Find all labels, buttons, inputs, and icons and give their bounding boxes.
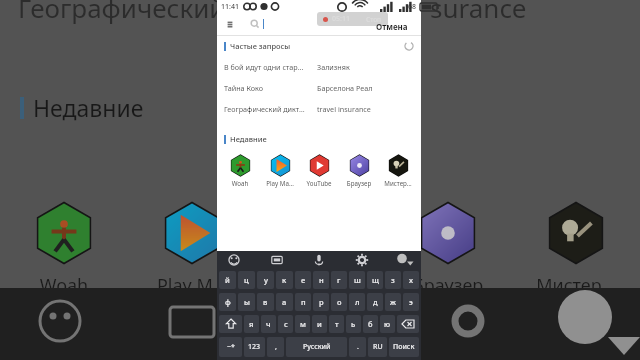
button[interactable]: Play Ma…	[262, 153, 298, 187]
button[interactable]: Браузер	[406, 196, 490, 298]
button[interactable]: Backspace	[397, 315, 419, 333]
staticText: б	[368, 319, 373, 329]
button[interactable]: к	[276, 271, 293, 289]
button[interactable]: у	[257, 271, 274, 289]
button[interactable]: и	[312, 315, 327, 333]
staticText: ~*	[227, 342, 235, 352]
button[interactable]: Voice input	[312, 253, 326, 267]
button[interactable]: Поиск	[389, 337, 419, 357]
staticText: Недавние	[230, 134, 267, 144]
button[interactable]: д	[367, 293, 383, 311]
staticText: ф	[225, 297, 231, 307]
staticText: Поиск	[393, 342, 415, 352]
button[interactable]: м	[295, 315, 310, 333]
staticText: м	[300, 319, 306, 329]
button[interactable]: п	[295, 293, 311, 311]
button[interactable]: я	[244, 315, 259, 333]
button[interactable]: е	[295, 271, 311, 289]
button[interactable]: ж	[385, 293, 401, 311]
staticText: RU	[373, 342, 383, 352]
staticText: в	[263, 297, 268, 307]
button[interactable]: YouTube	[301, 153, 337, 187]
button[interactable]: RU	[368, 337, 387, 357]
button[interactable]: 123	[244, 337, 265, 357]
staticText: YouTube	[278, 273, 362, 298]
button[interactable]: о	[331, 293, 347, 311]
button[interactable]: с	[278, 315, 293, 333]
staticText: Тайна Коко	[224, 83, 317, 93]
staticText: В бой идут одни стар…	[224, 62, 317, 72]
button[interactable]: Shift	[219, 315, 242, 333]
button[interactable]: 05:11	[323, 14, 382, 24]
button[interactable]: .	[349, 337, 366, 357]
staticText: Play M…	[150, 273, 234, 298]
button[interactable]: ц	[238, 271, 255, 289]
staticText: о	[337, 297, 342, 307]
button[interactable]: В бой идут одни стар…	[224, 56, 414, 77]
staticText: Woah	[222, 179, 258, 187]
staticText: ,	[275, 342, 277, 352]
button[interactable]: Menu	[224, 13, 414, 35]
staticText: з	[391, 275, 395, 285]
button[interactable]: х	[403, 271, 419, 289]
button[interactable]: а	[276, 293, 293, 311]
staticText: Мистер…	[534, 273, 618, 298]
staticText: Недавние	[33, 92, 144, 123]
button[interactable]: Географический дикт…	[224, 98, 414, 119]
button[interactable]: ,	[267, 337, 284, 357]
staticText: и	[317, 319, 322, 329]
staticText: Русский	[303, 342, 331, 352]
button[interactable]: й	[219, 271, 236, 289]
button[interactable]: н	[313, 271, 329, 289]
button[interactable]: г	[331, 271, 347, 289]
button[interactable]: ф	[219, 293, 236, 311]
staticText: Мистер…	[380, 179, 416, 187]
button[interactable]: Play M…	[150, 196, 234, 298]
button[interactable]: ~*	[219, 337, 242, 357]
button[interactable]: в	[257, 293, 274, 311]
button[interactable]: Русский	[286, 337, 347, 357]
staticText: я	[249, 319, 254, 329]
staticText: й	[225, 275, 230, 285]
staticText: surance	[430, 0, 527, 25]
button[interactable]: ш	[349, 271, 365, 289]
button[interactable]: Refresh	[404, 41, 414, 51]
staticText: н	[319, 275, 324, 285]
button[interactable]: Keyboard layout	[270, 253, 284, 267]
button[interactable]: ч	[261, 315, 276, 333]
button[interactable]: YouTube	[278, 196, 362, 298]
staticText: Географический	[18, 0, 226, 25]
button[interactable]: ю	[380, 315, 395, 333]
button[interactable]: Мистер…	[534, 196, 618, 298]
staticText: YouTube	[301, 179, 337, 187]
staticText: а	[282, 297, 287, 307]
button[interactable]: Woah	[22, 196, 106, 298]
staticText: Частые запросы	[230, 41, 291, 51]
staticText: Woah	[22, 273, 106, 298]
staticText: л	[355, 297, 360, 307]
button[interactable]: Woah	[222, 153, 258, 187]
button[interactable]: Браузер	[341, 153, 377, 187]
button[interactable]: Menu	[224, 18, 236, 30]
staticText: ы	[244, 297, 250, 307]
staticText: д	[373, 297, 378, 307]
button[interactable]: т	[329, 315, 344, 333]
button[interactable]: ы	[238, 293, 255, 311]
staticText: Play Ma…	[262, 179, 298, 187]
button[interactable]: Settings	[355, 253, 369, 267]
button[interactable]: Emoji	[227, 253, 241, 267]
staticText: п	[301, 297, 306, 307]
button[interactable]: щ	[367, 271, 383, 289]
button[interactable]: э	[403, 293, 419, 311]
button[interactable]: ь	[346, 315, 361, 333]
button[interactable]: р	[313, 293, 329, 311]
button[interactable]: з	[385, 271, 401, 289]
button[interactable]: Мистер…	[380, 153, 416, 187]
button[interactable]: More	[397, 253, 411, 267]
button[interactable]: л	[349, 293, 365, 311]
button[interactable]: б	[363, 315, 378, 333]
staticText: у	[264, 275, 268, 285]
staticText: 11:41	[221, 2, 239, 12]
button[interactable]: Тайна Коко	[224, 77, 414, 98]
staticText: Барселона Реал	[317, 83, 373, 93]
